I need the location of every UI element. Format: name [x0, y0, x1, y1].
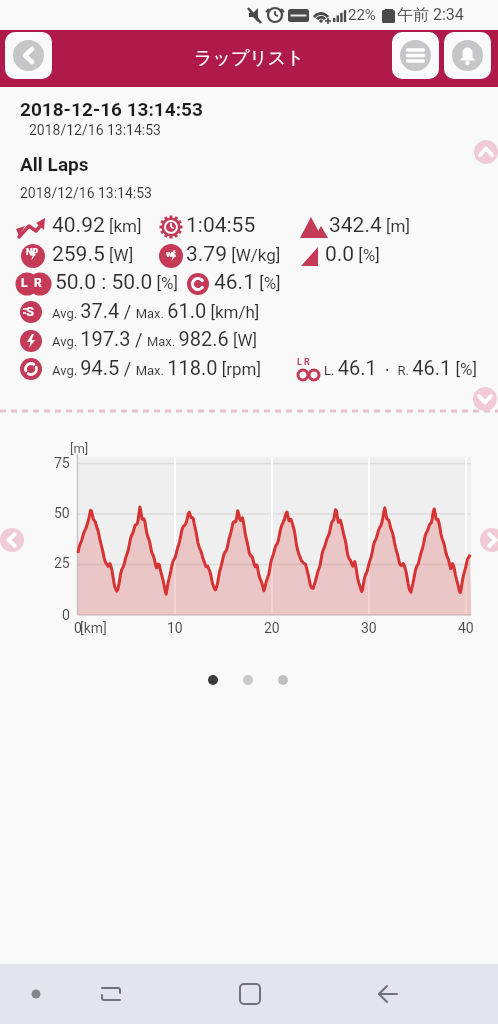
staticText: 2018/12/16 13:14:53	[29, 122, 161, 138]
staticText: L	[21, 276, 28, 290]
staticText: 30	[361, 620, 377, 636]
staticText: S	[26, 304, 34, 319]
button[interactable]	[0, 528, 24, 552]
staticText: Avg. 37.4 / Max. 61.0 [km/h]	[52, 299, 260, 322]
staticText: 0.0 [%]	[325, 242, 380, 267]
staticText: 50.0 : 50.0 [%]	[55, 270, 179, 295]
staticText: wt	[166, 249, 176, 260]
button[interactable]	[243, 675, 253, 685]
staticText: 2018/12/16 13:14:53	[20, 185, 152, 201]
button[interactable]	[12, 970, 60, 1018]
staticText: L R	[297, 357, 310, 368]
staticText: L. 46.1 ・ R. 46.1 [%]	[324, 356, 477, 379]
staticText: [km]	[80, 620, 107, 636]
staticText: 0	[74, 620, 82, 636]
button[interactable]	[226, 970, 274, 1018]
staticText: 午前 2:34	[397, 5, 464, 25]
staticText: 342.4 [m]	[329, 213, 410, 238]
staticText: R	[34, 276, 42, 290]
staticText: 46.1 [%]	[214, 270, 281, 295]
button[interactable]	[364, 970, 412, 1018]
staticText: 75	[54, 455, 70, 471]
staticText: Avg. 197.3 / Max. 982.6 [W]	[52, 327, 258, 350]
staticText: All Laps	[20, 153, 89, 175]
button[interactable]	[480, 528, 498, 552]
button[interactable]	[87, 970, 135, 1018]
staticText: 22%	[348, 6, 376, 24]
staticText: 40	[458, 620, 474, 636]
staticText: 0	[62, 607, 70, 623]
staticText: Avg. 94.5 / Max. 118.0 [rpm]	[52, 356, 261, 379]
button[interactable]	[473, 387, 497, 411]
button[interactable]	[208, 675, 218, 685]
button[interactable]	[444, 32, 491, 79]
staticText: 25	[54, 555, 70, 571]
staticText: 259.5 [W]	[52, 242, 134, 267]
staticText: ラップリスト	[194, 47, 305, 70]
button[interactable]	[5, 32, 52, 79]
staticText: 10	[167, 620, 183, 636]
staticText: 1:04:55	[186, 213, 260, 238]
staticText: [m]	[70, 441, 89, 456]
staticText: 40.92 [km]	[52, 213, 142, 238]
button[interactable]	[278, 675, 288, 685]
staticText: 50	[54, 505, 70, 521]
button[interactable]	[392, 32, 439, 79]
staticText: 2018-12-16 13:14:53	[20, 98, 203, 120]
staticText: NP	[26, 247, 39, 258]
staticText: 20	[264, 620, 280, 636]
staticText: 3.79 [W/kg]	[186, 242, 281, 267]
button[interactable]	[474, 140, 498, 164]
